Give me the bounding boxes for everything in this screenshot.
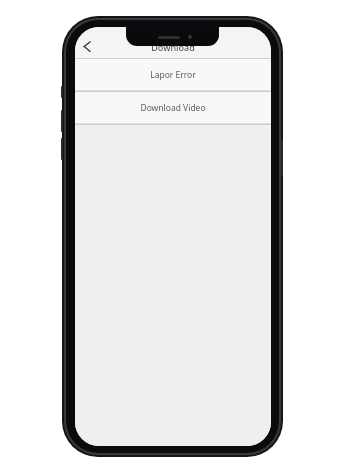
staticText: Lapor Error xyxy=(150,69,196,81)
button[interactable]: Download Video xyxy=(75,92,271,123)
staticText: Download Video xyxy=(140,102,206,114)
button[interactable]: Lapor Error xyxy=(75,59,271,90)
button[interactable]: Back xyxy=(76,35,98,57)
staticText: Download xyxy=(151,41,195,53)
